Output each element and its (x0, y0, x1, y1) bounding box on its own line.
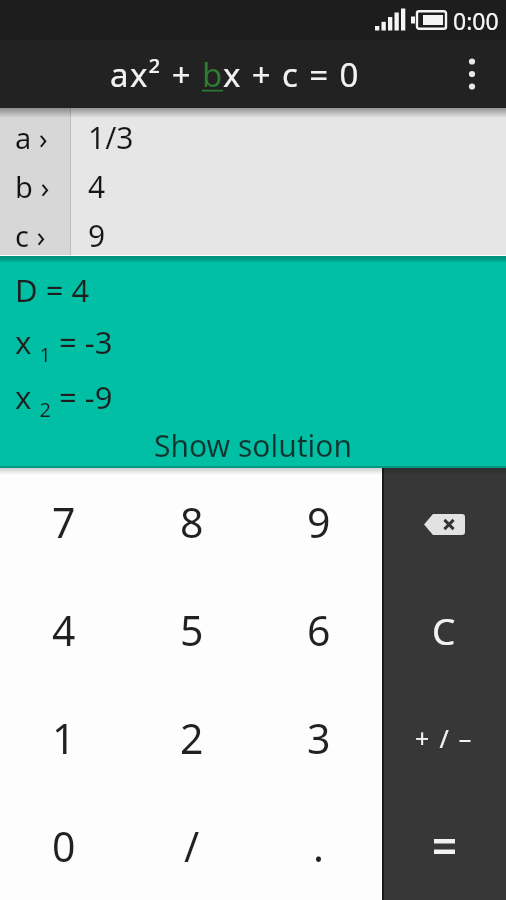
staticText: 7 (52, 494, 76, 550)
staticText: C (432, 605, 456, 655)
button[interactable]: 7 (0, 468, 128, 576)
button[interactable] (382, 468, 506, 576)
staticText: + / – (415, 721, 474, 755)
button[interactable]: c › (0, 206, 506, 255)
staticText: / (184, 818, 200, 874)
staticText: 3 (307, 710, 331, 766)
staticText: 4 (52, 602, 76, 658)
button[interactable]: C (382, 576, 506, 684)
staticText: x 1 = -3 (15, 321, 113, 367)
staticText: a › (15, 118, 48, 157)
button[interactable]: b › (0, 157, 506, 206)
button[interactable]: / (128, 792, 255, 900)
button[interactable]: 4 (0, 576, 128, 684)
staticText: 6 (307, 602, 331, 658)
button[interactable]: + / – (382, 684, 506, 792)
staticText: 2 (180, 710, 204, 766)
staticText: ax² + bx + c = 0 (110, 52, 360, 97)
button[interactable] (382, 792, 506, 900)
button[interactable]: 0 (0, 792, 128, 900)
button[interactable] (458, 52, 486, 96)
staticText: b › (15, 167, 50, 206)
staticText: 0 (52, 818, 76, 874)
staticText: . (313, 818, 324, 874)
button[interactable]: 1 (0, 684, 128, 792)
staticText: 9 (88, 215, 106, 255)
staticText: 0:00 (453, 5, 499, 36)
button[interactable]: . (255, 792, 382, 900)
staticText: 5 (180, 602, 204, 658)
button[interactable]: 6 (255, 576, 382, 684)
button[interactable]: a › (0, 108, 506, 157)
staticText: 8 (180, 494, 204, 550)
button[interactable]: Show solution (154, 425, 352, 466)
staticText: 1 (52, 710, 76, 766)
staticText: 9 (307, 494, 331, 550)
button[interactable]: 8 (128, 468, 255, 576)
staticText: Show solution (154, 425, 352, 466)
staticText: c › (15, 216, 46, 255)
button[interactable]: 5 (128, 576, 255, 684)
staticText: x 2 = -9 (15, 376, 113, 422)
button[interactable]: 9 (255, 468, 382, 576)
button[interactable]: 2 (128, 684, 255, 792)
button[interactable]: 3 (255, 684, 382, 792)
staticText: 1/3 (88, 117, 134, 157)
staticText: D = 4 (15, 269, 90, 311)
staticText: 4 (88, 166, 106, 206)
